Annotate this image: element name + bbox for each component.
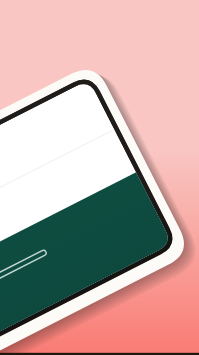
button[interactable]: App preview screenshot: [0, 0, 199, 355]
